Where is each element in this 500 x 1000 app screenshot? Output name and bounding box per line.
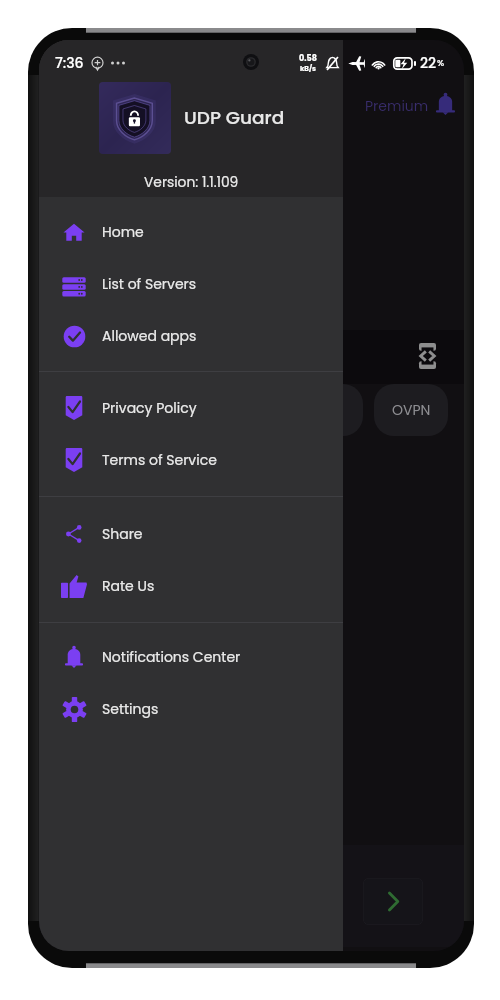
button[interactable]: Settings	[39, 683, 343, 735]
staticText: Version: 1.1.109	[144, 173, 239, 192]
button[interactable]: Rate Us	[39, 560, 343, 612]
staticText: Notifications Center	[102, 647, 241, 667]
button[interactable]: Notifications	[431, 90, 459, 118]
button[interactable]: OVPN	[374, 384, 448, 436]
staticText: Home	[102, 222, 144, 242]
button[interactable]: Terms of Service	[39, 434, 343, 486]
button[interactable]: Home	[39, 206, 343, 258]
button[interactable]: Privacy Policy	[39, 382, 343, 434]
staticText: kB/s	[300, 64, 317, 74]
staticText: Privacy Policy	[102, 398, 197, 418]
staticText: 0.58	[299, 53, 317, 64]
staticText: OVPN	[392, 400, 431, 420]
staticText: Rate Us	[102, 576, 155, 596]
button[interactable]: Notifications Center	[39, 631, 343, 683]
button[interactable]: UDP	[288, 384, 363, 436]
staticText: Allowed apps	[102, 326, 197, 346]
staticText: List of Servers	[102, 274, 197, 294]
button[interactable]: Premium	[361, 93, 433, 119]
staticText: UDP Guard	[184, 105, 285, 131]
staticText: 7:36	[55, 53, 84, 73]
button[interactable]: Share	[39, 508, 343, 560]
staticText: 22	[420, 53, 437, 73]
staticText: Share	[102, 524, 143, 544]
button[interactable]: List of Servers	[39, 258, 343, 310]
staticText: %	[437, 57, 445, 70]
button[interactable]: Developer mode	[415, 340, 439, 372]
staticText: Premium	[365, 96, 429, 116]
button[interactable]: Allowed apps	[39, 310, 343, 362]
staticText: Terms of Service	[102, 450, 217, 470]
staticText: Settings	[102, 699, 159, 719]
button[interactable]: Connect	[363, 878, 423, 925]
